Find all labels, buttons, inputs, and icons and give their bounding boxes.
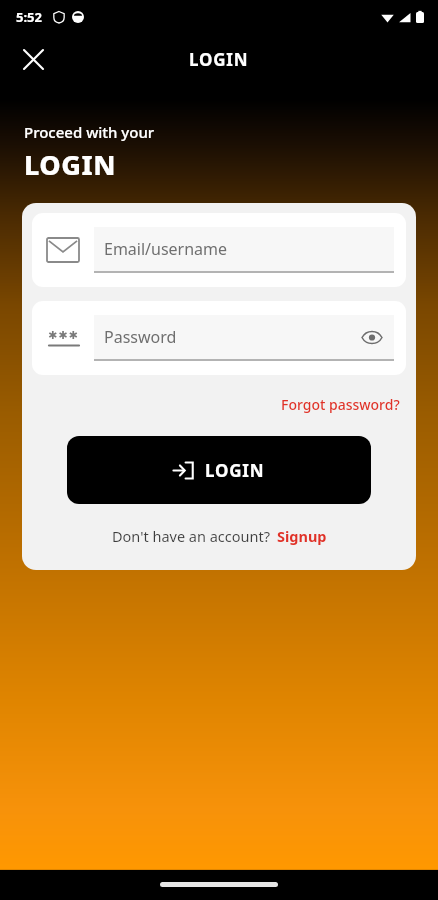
button[interactable]: LOGIN	[67, 436, 371, 504]
staticText: Don't have an account?	[112, 526, 270, 546]
staticText: LOGIN	[189, 48, 249, 71]
button[interactable]: Email/username	[32, 213, 406, 287]
staticText: LOGIN	[205, 459, 265, 482]
staticText: Signup	[277, 526, 327, 546]
staticText: Forgot password?	[281, 395, 400, 414]
staticText: LOGIN	[24, 146, 116, 183]
button[interactable]: Forgot password?	[275, 393, 406, 416]
staticText: Email/username	[104, 238, 386, 260]
staticText: Password	[104, 326, 358, 348]
staticText: 5:52	[16, 8, 42, 26]
staticText: Proceed with your	[24, 122, 155, 142]
staticText: ✱✱✱	[48, 329, 79, 342]
button[interactable]: ✱✱✱	[32, 301, 406, 375]
button[interactable]: Close	[12, 38, 54, 80]
button[interactable]: Show password	[358, 323, 386, 351]
button[interactable]: Don't have an account?	[32, 526, 406, 546]
